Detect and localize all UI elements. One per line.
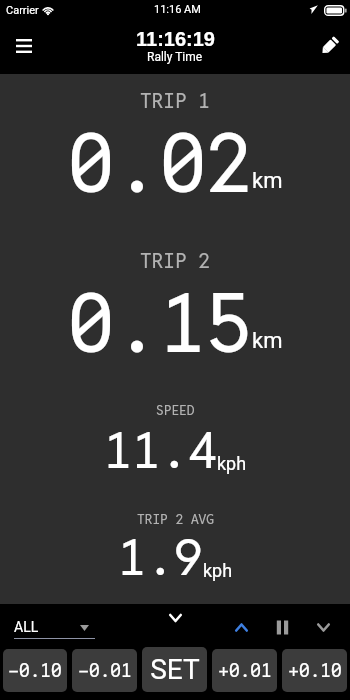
- staticText: -0.10: [8, 658, 62, 683]
- staticText: 11.4: [104, 418, 217, 483]
- button[interactable]: -0.10: [3, 649, 67, 692]
- staticText: SET: [150, 653, 200, 686]
- staticText: ALL: [14, 619, 39, 635]
- button[interactable]: Edit: [307, 21, 350, 71]
- staticText: km: [252, 328, 283, 354]
- staticText: km: [252, 168, 283, 194]
- staticText: kph: [217, 453, 247, 474]
- button[interactable]: Pause: [267, 613, 298, 642]
- staticText: TRIP 1: [140, 87, 210, 114]
- button[interactable]: Menu: [2, 21, 46, 71]
- button[interactable]: -0.01: [72, 649, 137, 692]
- button[interactable]: More: [308, 613, 339, 642]
- staticText: TRIP 2: [140, 247, 210, 274]
- button[interactable]: +0.10: [282, 649, 347, 692]
- staticText: 0.15: [68, 270, 252, 376]
- staticText: 11:16 AM: [154, 3, 201, 16]
- button[interactable]: +0.01: [212, 649, 277, 692]
- staticText: TRIP 2 AVG: [137, 510, 214, 528]
- staticText: 1.9: [118, 525, 203, 590]
- staticText: 11:16:19: [136, 28, 215, 50]
- button[interactable]: ALL: [14, 615, 96, 639]
- button[interactable]: SET: [142, 647, 207, 692]
- staticText: SPEED: [156, 401, 195, 419]
- staticText: +0.10: [288, 658, 342, 683]
- staticText: 0.02: [68, 110, 252, 216]
- staticText: Carrier: [6, 4, 39, 17]
- staticText: Rally Time: [147, 50, 203, 64]
- button[interactable]: Start: [226, 613, 257, 642]
- staticText: kph: [203, 560, 233, 581]
- button[interactable]: Collapse: [160, 604, 191, 632]
- staticText: -0.01: [78, 658, 132, 683]
- staticText: +0.01: [218, 658, 272, 683]
